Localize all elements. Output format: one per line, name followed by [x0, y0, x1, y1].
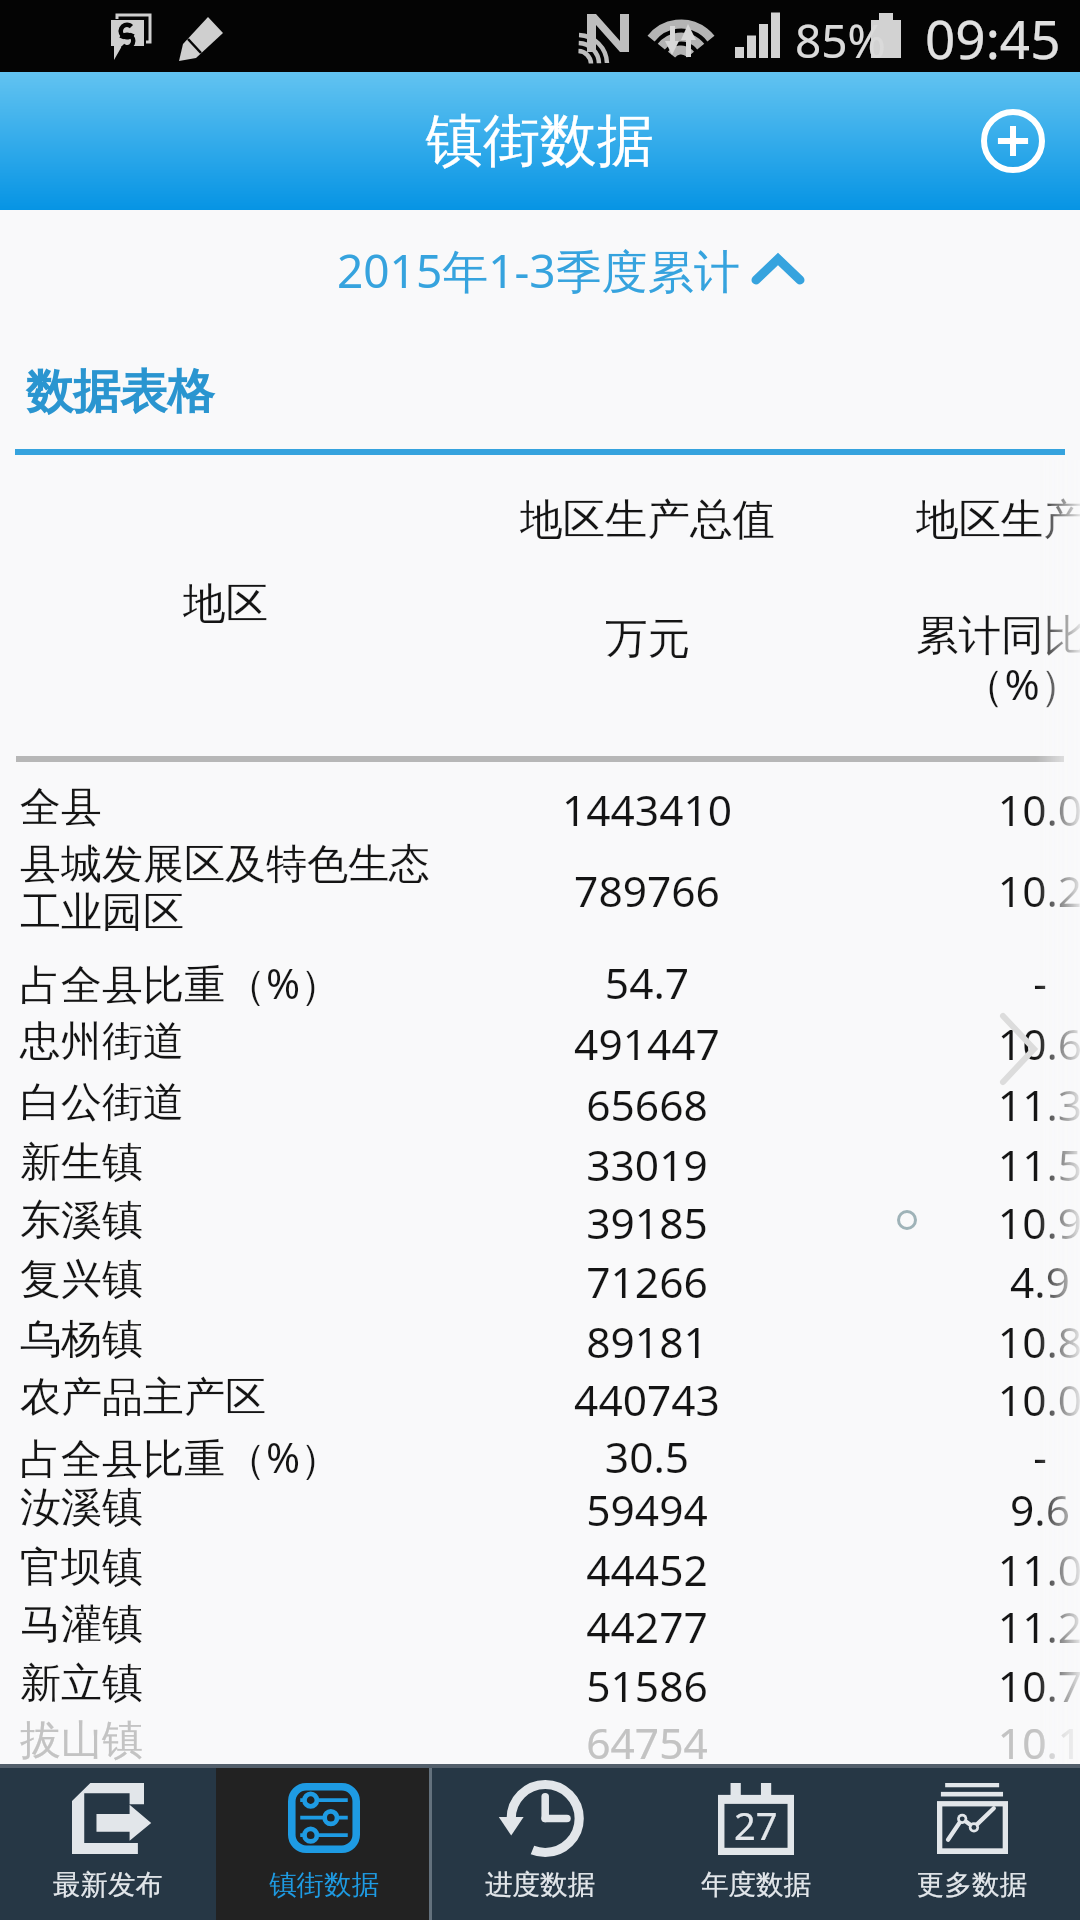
staticText: 镇街数据	[269, 1868, 379, 1903]
staticText: 10.8	[860, 1313, 1080, 1371]
button[interactable]: Add	[980, 108, 1046, 174]
button[interactable]	[0, 952, 1080, 1010]
button[interactable]: 2015年1-3季度累计	[0, 238, 1080, 302]
staticText: 10.1	[860, 1714, 1080, 1764]
staticText: 数据表格	[26, 363, 214, 422]
staticText: 51586	[480, 1657, 814, 1715]
staticText: 44452	[480, 1541, 814, 1599]
staticText: 官坝镇	[20, 1542, 143, 1594]
staticText: 89181	[480, 1313, 814, 1371]
button[interactable]	[0, 1074, 1080, 1132]
staticText: 占全县比重（%）	[20, 1429, 342, 1485]
staticText: 东溪镇	[20, 1195, 143, 1247]
button[interactable]: 27	[648, 1764, 864, 1920]
button[interactable]	[0, 1369, 1080, 1427]
staticText: 491447	[480, 1015, 814, 1073]
staticText: 全县	[20, 782, 102, 834]
button[interactable]: 更多数据	[864, 1764, 1080, 1920]
staticText: 乌杨镇	[20, 1314, 143, 1366]
button[interactable]	[0, 860, 1080, 918]
button[interactable]	[0, 1426, 1080, 1484]
staticText: 10.2	[860, 862, 1080, 920]
staticText: 54.7	[480, 954, 814, 1012]
staticText: 59494	[480, 1481, 814, 1539]
staticText: 30.5	[480, 1428, 814, 1486]
button[interactable]	[0, 1311, 1080, 1369]
staticText: 11.3	[860, 1076, 1080, 1134]
staticText: 更多数据	[917, 1868, 1027, 1903]
staticText: 镇街数据	[426, 105, 654, 177]
staticText: 44277	[480, 1598, 814, 1656]
staticText: 65668	[480, 1076, 814, 1134]
button[interactable]	[0, 1655, 1080, 1713]
staticText: 县城发展区及特色生态	[20, 839, 430, 891]
staticText: 新立镇	[20, 1658, 143, 1710]
staticText: -	[860, 954, 1080, 1012]
staticText: 忠州街道	[20, 1016, 184, 1068]
staticText: 9.6	[860, 1481, 1080, 1539]
staticText: 新生镇	[20, 1137, 143, 1189]
staticText: 789766	[480, 862, 814, 920]
staticText: 工业园区	[20, 887, 184, 939]
staticText: 地区	[183, 577, 268, 631]
button[interactable]	[0, 1596, 1080, 1654]
staticText: 累计同比	[916, 609, 1080, 663]
staticText: 10.7	[860, 1657, 1080, 1715]
staticText: 10.9	[860, 1194, 1080, 1252]
staticText: 27	[734, 1799, 778, 1851]
staticText: 最新发布	[53, 1868, 163, 1903]
staticText: （%）	[962, 655, 1080, 713]
button[interactable]	[0, 1192, 1080, 1250]
staticText: 2015年1-3季度累计	[337, 239, 740, 302]
staticText: 440743	[480, 1371, 814, 1429]
staticText: 10.0	[860, 781, 1080, 839]
staticText: 39185	[480, 1194, 814, 1252]
staticText: 复兴镇	[20, 1254, 143, 1306]
button[interactable]	[0, 1712, 1080, 1764]
staticText: 汝溪镇	[20, 1482, 143, 1534]
staticText: 10.0	[860, 1371, 1080, 1429]
staticText: 进度数据	[485, 1868, 595, 1903]
staticText: 地区生产总值	[916, 493, 1080, 547]
staticText: -	[860, 1428, 1080, 1486]
staticText: 4.9	[860, 1253, 1080, 1311]
button[interactable]	[0, 1013, 1080, 1071]
button[interactable]: 最新发布	[0, 1764, 216, 1920]
staticText: 农产品主产区	[20, 1372, 266, 1424]
button[interactable]	[0, 1134, 1080, 1192]
staticText: 71266	[480, 1253, 814, 1311]
button[interactable]: 进度数据	[432, 1764, 648, 1920]
staticText: 33019	[480, 1136, 814, 1194]
staticText: 1443410	[480, 781, 814, 839]
staticText: 11.2	[860, 1598, 1080, 1656]
staticText: 拔山镇	[20, 1715, 143, 1764]
staticText: 白公街道	[20, 1077, 184, 1129]
staticText: 年度数据	[701, 1868, 811, 1903]
staticText: 64754	[480, 1714, 814, 1764]
staticText: 10.6	[860, 1015, 1080, 1073]
button[interactable]: 镇街数据	[216, 1764, 432, 1920]
staticText: 09:45	[925, 2, 1061, 74]
staticText: 占全县比重（%）	[20, 955, 342, 1011]
button[interactable]	[0, 1539, 1080, 1597]
staticText: 万元	[605, 612, 690, 666]
staticText: 11.0	[860, 1541, 1080, 1599]
button[interactable]	[0, 1251, 1080, 1309]
staticText: 马灌镇	[20, 1599, 143, 1651]
button[interactable]	[0, 1479, 1080, 1537]
staticText: 11.5	[860, 1136, 1080, 1194]
button[interactable]	[0, 779, 1080, 837]
staticText: 地区生产总值	[520, 493, 775, 547]
staticText: 85%	[795, 9, 886, 72]
